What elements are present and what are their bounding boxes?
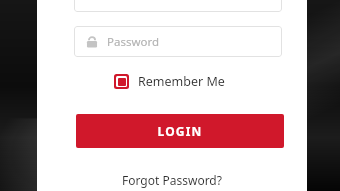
staticText: Password	[107, 34, 160, 50]
other: Password	[86, 36, 98, 48]
button[interactable]: Forgot Password?	[37, 172, 307, 188]
staticText: Forgot Password?	[122, 172, 222, 188]
staticText: Remember Me	[138, 73, 225, 90]
button[interactable]	[74, 0, 282, 12]
button[interactable]: LOGIN	[76, 114, 284, 148]
button[interactable]: Password	[74, 26, 282, 57]
staticText: LOGIN	[157, 123, 203, 139]
button[interactable]: Remember Me	[112, 71, 227, 92]
